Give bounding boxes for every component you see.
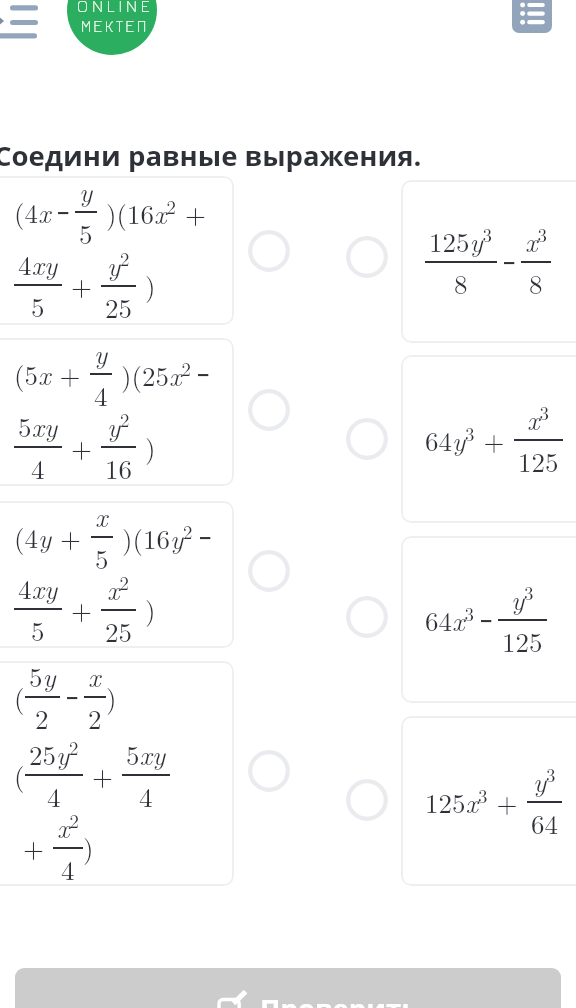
staticText: 125y3: [429, 221, 493, 260]
staticText: 5: [31, 287, 45, 325]
staticText: 5: [95, 539, 109, 577]
staticText: (5x +: [14, 355, 90, 393]
staticText: y: [94, 338, 108, 372]
button[interactable]: Connect expression: [344, 594, 390, 640]
staticText: x3: [527, 399, 549, 438]
button[interactable]: (4y +: [0, 501, 234, 648]
button[interactable]: ONLINE: [67, 0, 157, 55]
staticText: 4: [94, 376, 108, 414]
staticText: )(25x2: [112, 355, 191, 394]
staticText: 125x3 +: [425, 782, 527, 821]
staticText: x2: [57, 807, 79, 846]
staticText: y3: [533, 761, 556, 800]
staticText: (4x: [14, 193, 51, 231]
button[interactable]: Connect expression: [246, 548, 292, 594]
staticText: +: [62, 266, 101, 304]
staticText: Проверить: [260, 990, 419, 1008]
button[interactable]: Connect expression: [246, 387, 292, 433]
staticText: 8: [454, 264, 468, 302]
button[interactable]: 64y3 +: [401, 355, 576, 523]
staticText: 8: [529, 264, 543, 302]
button[interactable]: Connect expression: [344, 777, 390, 823]
staticText: 5xy: [18, 407, 58, 445]
staticText: 5y: [29, 661, 56, 695]
staticText: (4y +: [14, 518, 91, 556]
button[interactable]: Connect expression: [246, 228, 292, 274]
staticText: +: [62, 428, 101, 466]
staticText: 4: [31, 449, 45, 486]
button[interactable]: Проверить: [15, 968, 561, 1008]
staticText: ): [83, 828, 94, 866]
button[interactable]: (: [0, 661, 234, 886]
staticText: ONLINE: [77, 0, 154, 16]
button[interactable]: (4x: [0, 176, 234, 325]
staticText: 4: [61, 850, 75, 886]
staticText: 2: [35, 699, 49, 737]
button[interactable]: 125x3 +: [401, 716, 576, 886]
button[interactable]: 64x3: [401, 536, 576, 703]
staticText: ): [136, 590, 156, 628]
button[interactable]: (5x +: [0, 338, 234, 486]
button[interactable]: Task list: [512, 0, 552, 33]
staticText: 25y2: [29, 734, 79, 773]
staticText: 16: [105, 449, 132, 486]
staticText: )(16y2: [113, 518, 193, 557]
staticText: 4: [47, 777, 61, 815]
staticText: y: [79, 176, 93, 210]
staticText: 5: [79, 214, 93, 252]
staticText: 64x3: [425, 600, 474, 639]
button[interactable]: Connect expression: [344, 416, 390, 462]
staticText: x3: [525, 221, 547, 260]
button[interactable]: Connect expression: [344, 234, 390, 280]
staticText: 4xy: [18, 569, 58, 607]
staticText: 125: [502, 622, 543, 660]
button[interactable]: Menu: [0, 0, 42, 50]
staticText: Соедини равные выражения.: [0, 137, 422, 174]
button[interactable]: Connect expression: [246, 748, 292, 794]
staticText: x2: [107, 569, 129, 608]
staticText: (: [14, 678, 25, 716]
staticText: 5xy: [126, 735, 166, 773]
staticText: ): [106, 678, 117, 716]
staticText: y2: [107, 245, 130, 284]
staticText: 64y3 +: [425, 420, 514, 459]
staticText: y3: [511, 579, 534, 618]
button[interactable]: 125y3: [401, 180, 576, 343]
staticText: (: [14, 756, 25, 794]
staticText: 125: [518, 442, 559, 480]
staticText: 4xy: [18, 245, 58, 283]
staticText: 25: [105, 612, 132, 648]
staticText: 25: [105, 288, 132, 325]
staticText: 5: [31, 611, 45, 648]
staticText: x: [95, 501, 108, 535]
staticText: y2: [107, 406, 130, 445]
staticText: ): [136, 266, 156, 304]
staticText: 4: [139, 777, 153, 815]
staticText: МЕКТЕП: [81, 17, 149, 36]
staticText: +: [14, 828, 53, 866]
staticText: +: [62, 590, 101, 628]
staticText: x: [88, 661, 101, 695]
staticText: ): [136, 428, 156, 466]
staticText: +: [83, 756, 122, 794]
staticText: )(16x2 +: [97, 193, 215, 232]
staticText: 2: [88, 699, 102, 737]
staticText: 64: [531, 804, 558, 842]
